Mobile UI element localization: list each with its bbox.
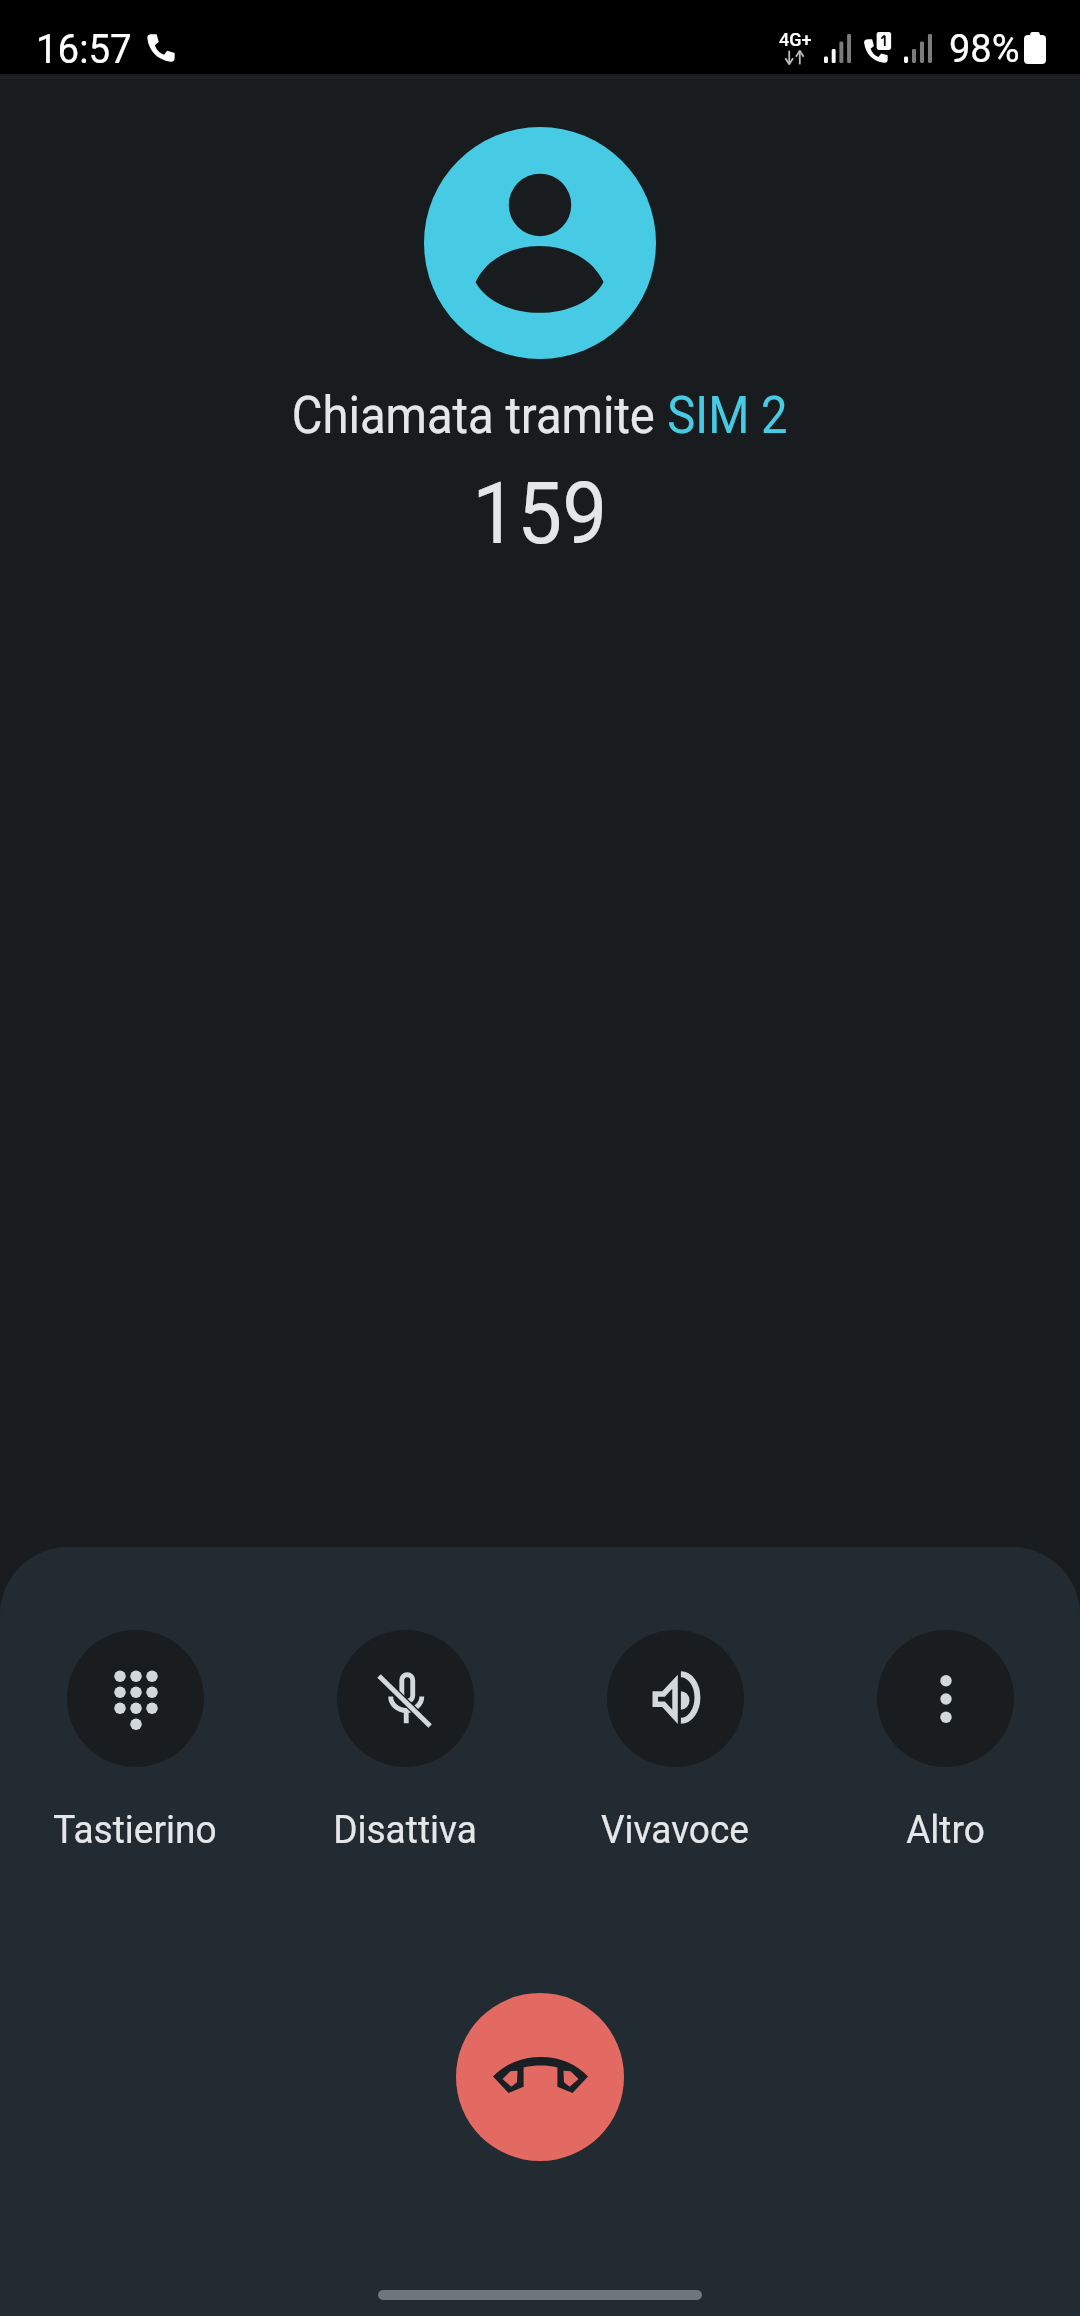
staticText: Chiamata tramite — [292, 385, 667, 445]
staticText: Disattiva — [333, 1807, 477, 1853]
staticText: 159 — [472, 464, 608, 564]
button[interactable]: Tastierino — [0, 1630, 270, 1853]
button[interactable]: Termina chiamata — [456, 1993, 624, 2161]
staticText: SIM 2 — [667, 385, 788, 445]
staticText: Vivavoce — [601, 1807, 749, 1853]
staticText: Altro — [906, 1807, 985, 1853]
staticText: 16:57 — [36, 26, 132, 73]
staticText: Tastierino — [53, 1807, 217, 1853]
button[interactable]: Altre opzioni — [810, 1630, 1080, 1853]
staticText: 4G+ — [779, 29, 812, 50]
button[interactable]: Vivavoce — [540, 1630, 810, 1853]
staticText: 98% — [949, 27, 1020, 72]
button[interactable]: Disattiva microfono — [270, 1630, 540, 1853]
